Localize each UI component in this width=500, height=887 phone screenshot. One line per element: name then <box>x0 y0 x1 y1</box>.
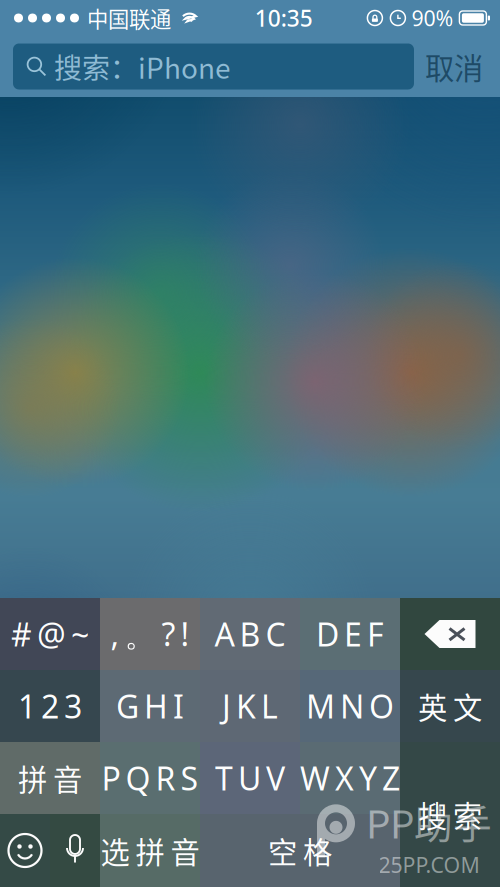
button[interactable]: D E F <box>300 598 400 670</box>
button[interactable]: 拼 音 <box>0 742 100 814</box>
button[interactable]: P Q R S <box>100 742 200 814</box>
staticText: 拼 音 <box>18 757 82 799</box>
staticText: 中国联通 <box>87 3 171 33</box>
staticText: 1 2 3 <box>18 685 82 727</box>
button[interactable] <box>400 598 500 670</box>
button[interactable]: 1 2 3 <box>0 670 100 742</box>
staticText: 搜 索 <box>418 793 482 836</box>
button[interactable]: # @ ~ <box>0 598 100 670</box>
button[interactable]: , 。 ? ! <box>100 598 200 670</box>
staticText: W X Y Z <box>300 757 400 799</box>
button[interactable]: 搜 索 <box>400 742 500 887</box>
button[interactable]: G H I <box>100 670 200 742</box>
button[interactable]: W X Y Z <box>300 742 400 814</box>
staticText: # @ ~ <box>11 613 89 655</box>
button[interactable]: 取消 <box>417 43 491 89</box>
staticText: M N O <box>306 685 394 727</box>
staticText: 25PP.COM <box>378 851 479 879</box>
button[interactable]: 选 拼 音 <box>100 814 200 887</box>
staticText: G H I <box>116 685 184 727</box>
button[interactable]: J K L <box>200 670 300 742</box>
button[interactable] <box>0 814 50 887</box>
button[interactable] <box>50 814 100 887</box>
button[interactable]: 英 文 <box>400 670 500 742</box>
staticText: A B C <box>214 613 285 655</box>
staticText: PP助手 <box>366 794 492 850</box>
staticText: J K L <box>222 685 278 727</box>
button[interactable]: A B C <box>200 598 300 670</box>
staticText: 90% <box>411 4 453 32</box>
button[interactable]: T U V <box>200 742 300 814</box>
staticText: 空 格 <box>268 829 332 872</box>
staticText: D E F <box>316 613 384 655</box>
staticText: , 。 ? ! <box>110 613 189 655</box>
staticText: P Q R S <box>101 757 198 799</box>
staticText: T U V <box>215 757 285 799</box>
staticText: 英 文 <box>418 685 482 727</box>
staticText: 取消 <box>425 45 483 88</box>
staticText: 选 拼 音 <box>100 829 199 872</box>
button[interactable]: M N O <box>300 670 400 742</box>
staticText: 10:35 <box>255 3 313 33</box>
button[interactable]: 空 格 <box>200 814 400 887</box>
staticText: 搜索：iPhone <box>54 46 231 87</box>
button[interactable]: 搜索：iPhone <box>13 43 414 89</box>
